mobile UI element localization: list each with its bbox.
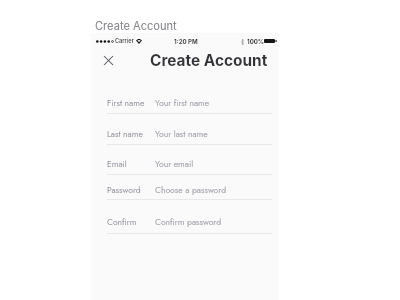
staticText: Last name (107, 128, 143, 140)
staticText: 100% (247, 38, 265, 45)
staticText: Your last name (155, 128, 208, 140)
button[interactable]: Email (106, 157, 272, 175)
staticText: Carrier (115, 38, 134, 45)
staticText: Email (107, 158, 127, 170)
staticText: 1:20 PM (174, 38, 198, 45)
staticText: Create Account (95, 19, 177, 32)
staticText: Choose a password (155, 184, 227, 196)
staticText: Confirm (107, 216, 137, 228)
staticText: Create Account (150, 51, 268, 70)
button[interactable]: Confirm (106, 216, 272, 234)
button[interactable]: Close (99, 51, 117, 69)
button[interactable]: First name (106, 96, 272, 114)
button[interactable]: Password (106, 183, 272, 200)
staticText: Your email (155, 158, 194, 170)
staticText: First name (107, 97, 145, 109)
button[interactable]: Last name (106, 127, 272, 145)
staticText: Confirm password (155, 216, 222, 228)
staticText: Your first name (155, 97, 210, 109)
staticText: Password (107, 184, 141, 196)
